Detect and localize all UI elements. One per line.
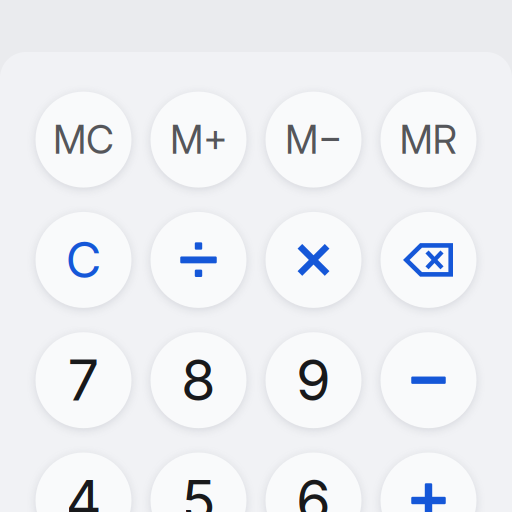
button[interactable]: 5 (150, 452, 246, 512)
staticText: 5 (181, 467, 215, 512)
button[interactable]: 8 (150, 332, 246, 428)
staticText: 6 (296, 467, 331, 512)
staticText: 4 (65, 467, 101, 512)
button[interactable]: Minus (380, 332, 476, 428)
button[interactable]: Delete (380, 212, 476, 308)
button[interactable]: Multiply (265, 212, 361, 308)
staticText: 9 (296, 346, 331, 414)
button[interactable]: Clear (35, 212, 131, 308)
staticText: 7 (67, 346, 99, 414)
button[interactable]: Divide (150, 212, 246, 308)
staticText: C (65, 230, 101, 290)
button[interactable]: 9 (265, 332, 361, 428)
staticText: M+ (170, 116, 227, 163)
staticText: MR (399, 116, 457, 163)
staticText: M− (285, 116, 342, 163)
button[interactable]: Memory subtract (265, 92, 361, 188)
button[interactable]: Memory add (150, 92, 246, 188)
button[interactable]: Memory clear (35, 92, 131, 188)
button[interactable]: Memory recall (380, 92, 476, 188)
button[interactable]: 6 (265, 452, 361, 512)
staticText: MC (53, 116, 114, 163)
button[interactable]: 4 (35, 452, 131, 512)
staticText: 8 (181, 346, 216, 414)
button[interactable]: Plus (380, 452, 476, 512)
button[interactable]: 7 (35, 332, 131, 428)
